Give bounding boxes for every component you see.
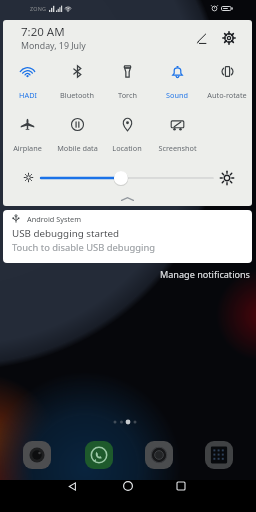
button[interactable]: Gallery xyxy=(145,441,173,469)
staticText: Torch xyxy=(118,90,137,100)
staticText: Auto-rotate xyxy=(207,90,247,100)
button[interactable]: Location xyxy=(102,109,152,153)
button[interactable]: Airplane mode xyxy=(3,109,52,153)
button[interactable]: Mobile data xyxy=(52,109,102,153)
button[interactable]: Back xyxy=(52,466,92,506)
button[interactable]: Home xyxy=(108,466,148,506)
button[interactable]: Camera xyxy=(23,441,51,469)
button[interactable]: Recent apps xyxy=(161,466,201,506)
staticText: ZONG xyxy=(30,5,47,12)
staticText: Location xyxy=(112,143,142,153)
button[interactable]: Manage notifications xyxy=(157,266,253,282)
staticText: Screenshot xyxy=(158,143,197,153)
button[interactable]: Calculator xyxy=(205,441,233,469)
button[interactable]: HADI xyxy=(3,56,52,100)
staticText: Android System xyxy=(27,214,82,224)
staticText: Manage notifications xyxy=(160,268,250,280)
button[interactable]: Screenshot xyxy=(152,109,202,153)
staticText: USB debugging started xyxy=(12,227,120,240)
staticText: Touch to disable USB debugging xyxy=(12,241,155,254)
button[interactable]: Sound xyxy=(152,56,202,100)
button[interactable]: Edit quick settings xyxy=(191,28,211,48)
button[interactable]: Auto-rotate xyxy=(202,56,252,100)
button[interactable]: Bluetooth xyxy=(52,56,102,100)
button[interactable]: Settings xyxy=(219,28,239,48)
staticText: 7:20 AM xyxy=(21,24,65,40)
staticText: Airplane mode xyxy=(3,143,52,153)
staticText: Sound xyxy=(166,90,188,100)
button[interactable]: Torch xyxy=(102,56,152,100)
staticText: Bluetooth xyxy=(60,90,94,100)
staticText: Mobile data xyxy=(57,143,98,153)
button[interactable]: WhatsApp xyxy=(85,441,113,469)
staticText: HADI xyxy=(19,90,37,100)
staticText: Monday, 19 July xyxy=(21,40,86,52)
button[interactable]: Android System xyxy=(3,210,252,263)
